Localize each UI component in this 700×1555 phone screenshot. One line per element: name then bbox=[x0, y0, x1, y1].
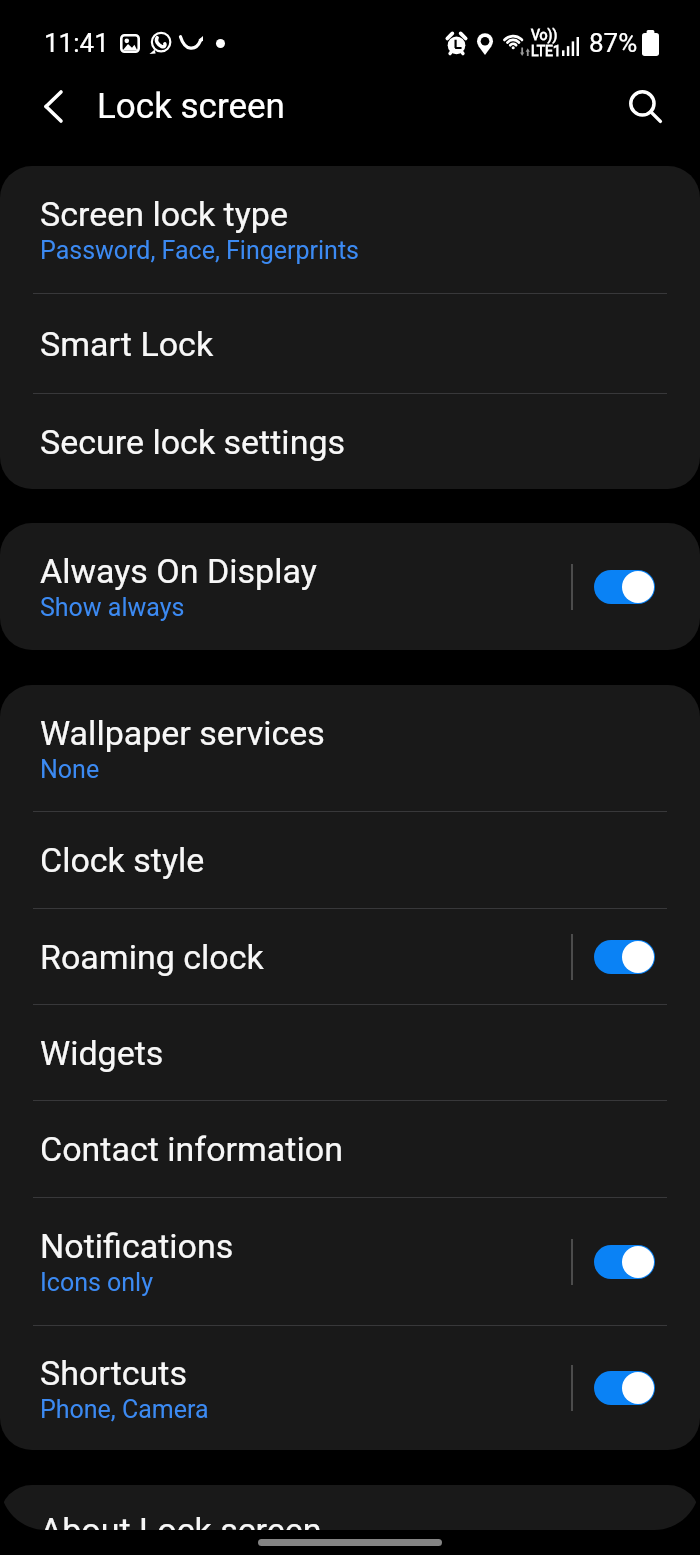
staticText: Always On Display bbox=[40, 551, 317, 591]
staticText: Clock style bbox=[40, 840, 205, 880]
staticText: Roaming clock bbox=[40, 937, 264, 977]
button[interactable]: Roaming clock bbox=[0, 909, 700, 1004]
staticText: Smart Lock bbox=[40, 324, 214, 364]
staticText: Notifications bbox=[40, 1226, 234, 1266]
button[interactable]: Wallpaper services bbox=[0, 685, 700, 811]
button[interactable]: Shortcuts bbox=[0, 1326, 700, 1450]
staticText: Secure lock settings bbox=[40, 422, 346, 462]
button[interactable]: Secure lock settings bbox=[0, 394, 700, 489]
button[interactable]: Widgets bbox=[0, 1005, 700, 1100]
button[interactable]: Always On Display bbox=[0, 523, 700, 650]
button[interactable]: Clock style bbox=[0, 812, 700, 908]
staticText: 87% bbox=[589, 28, 638, 58]
staticText: Phone, Camera bbox=[40, 1395, 209, 1424]
staticText: Icons only bbox=[40, 1268, 154, 1297]
button[interactable]: Contact information bbox=[0, 1101, 700, 1197]
staticText: Screen lock type bbox=[40, 194, 288, 234]
button[interactable]: Toggle bbox=[594, 940, 655, 974]
staticText: Contact information bbox=[40, 1129, 343, 1169]
staticText: 11:41 bbox=[44, 28, 109, 58]
button[interactable]: Notifications bbox=[0, 1198, 700, 1325]
button[interactable]: Toggle bbox=[594, 1371, 655, 1405]
staticText: Password, Face, Fingerprints bbox=[40, 236, 359, 265]
button[interactable]: Screen lock type bbox=[0, 166, 700, 293]
button[interactable]: Toggle bbox=[594, 570, 655, 604]
staticText: Show always bbox=[40, 593, 185, 622]
staticText: Widgets bbox=[40, 1033, 164, 1073]
staticText: Lock screen bbox=[97, 86, 285, 127]
button[interactable]: Toggle bbox=[594, 1245, 655, 1279]
button[interactable]: Back bbox=[31, 84, 75, 128]
staticText: None bbox=[40, 755, 100, 784]
button[interactable]: About Lock screen bbox=[0, 1485, 700, 1530]
staticText: LTE1 bbox=[531, 43, 561, 59]
staticText: Shortcuts bbox=[40, 1353, 187, 1393]
button[interactable]: Search bbox=[623, 84, 667, 128]
staticText: Wallpaper services bbox=[40, 713, 325, 753]
staticText: Vo)) bbox=[531, 27, 558, 43]
button[interactable]: Smart Lock bbox=[0, 294, 700, 393]
staticText: About Lock screen bbox=[40, 1510, 322, 1530]
